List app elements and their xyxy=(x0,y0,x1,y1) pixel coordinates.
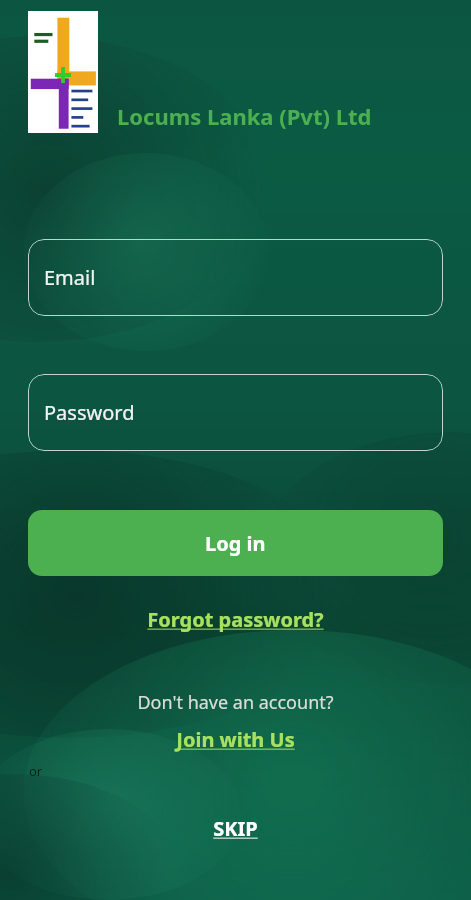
button[interactable]: SKIP xyxy=(199,810,272,847)
staticText: Join with Us xyxy=(176,726,295,753)
staticText: Log in xyxy=(205,530,266,557)
button[interactable]: Forgot password? xyxy=(139,602,332,637)
button[interactable]: Log in xyxy=(28,510,443,576)
staticText: Don't have an account? xyxy=(137,690,334,715)
staticText: SKIP xyxy=(213,815,258,842)
staticText: Password xyxy=(44,399,135,426)
staticText: Forgot password? xyxy=(147,606,324,633)
staticText: Email xyxy=(44,264,96,291)
button[interactable]: Join with Us xyxy=(166,723,305,756)
button[interactable]: Email xyxy=(28,239,443,316)
staticText: or xyxy=(29,762,43,780)
button[interactable]: Password xyxy=(28,374,443,451)
staticText: Locums Lanka (Pvt) Ltd xyxy=(117,101,372,131)
